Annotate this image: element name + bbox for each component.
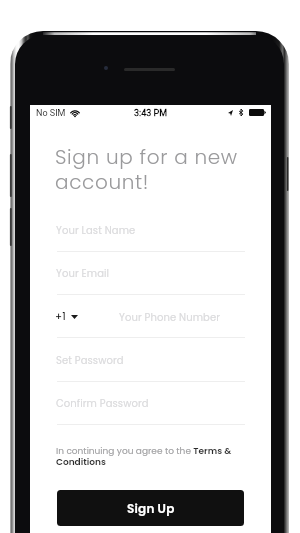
staticText: Your Email [56, 266, 110, 280]
button[interactable]: Sign Up [57, 490, 244, 526]
staticText: Your Last Name [56, 223, 136, 237]
staticText: 3:43 PM [134, 108, 168, 119]
other: Wi-Fi [70, 108, 80, 117]
button[interactable] [57, 351, 245, 382]
button[interactable] [57, 308, 245, 339]
staticText: +1 [55, 309, 66, 323]
staticText: Sign Up [127, 500, 175, 517]
button[interactable] [57, 221, 245, 252]
staticText: Sign up for a new account! [55, 143, 253, 196]
staticText: In continuing you agree to the Terms & C… [56, 445, 244, 468]
staticText: No SIM [36, 108, 66, 119]
staticText: Set Password [56, 353, 124, 367]
button[interactable] [57, 265, 245, 296]
staticText: Your Phone Number [119, 310, 221, 324]
button[interactable] [57, 395, 245, 426]
staticText: Confirm Password [56, 396, 149, 410]
button[interactable]: Select country code [55, 309, 78, 323]
